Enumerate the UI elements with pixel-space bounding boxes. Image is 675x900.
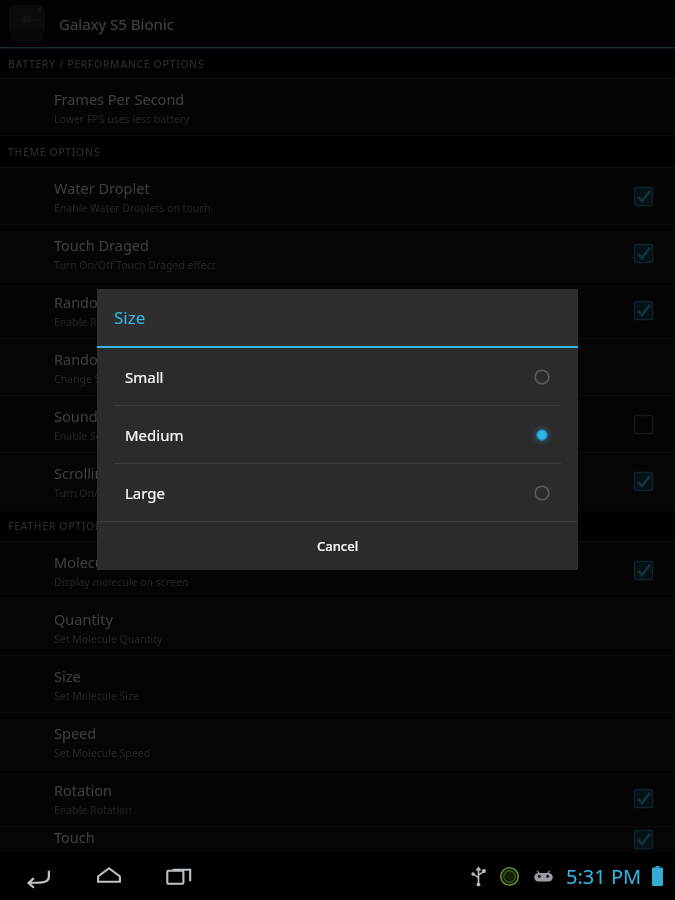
staticText: Set Molecule Size	[54, 689, 139, 703]
staticText: Set Molecule Speed	[54, 746, 151, 760]
button[interactable]: Random Speed	[0, 339, 675, 395]
staticText: Speed	[54, 723, 97, 743]
staticText: Turn On/Off Scrolling	[54, 486, 159, 500]
button[interactable]: Sound	[0, 396, 675, 452]
button[interactable]: Quantity	[0, 599, 675, 655]
staticText: Cancel	[317, 537, 359, 555]
staticText: Set Molecule Quantity	[54, 632, 163, 646]
staticText: Enable Water Droplets on touch	[54, 201, 211, 215]
staticText: THEME OPTIONS	[8, 145, 101, 159]
button[interactable]: Touch	[0, 827, 675, 852]
button[interactable]: Small	[97, 348, 578, 405]
button[interactable]: Random Color	[0, 282, 675, 338]
staticText: Lower FPS uses less battery	[54, 112, 190, 126]
staticText: Change Speed Randomly	[54, 372, 178, 386]
staticText: Small	[125, 367, 164, 387]
staticText: Galaxy S5 Bionic	[59, 14, 174, 34]
button[interactable]: Rotation	[0, 770, 675, 826]
staticText: Water Droplet	[54, 178, 150, 198]
staticText: Rotation	[54, 780, 112, 800]
button[interactable]: Large	[97, 464, 578, 521]
staticText: Molecule	[54, 552, 116, 572]
staticText: Touch	[54, 827, 95, 847]
staticText: Sound	[54, 406, 98, 426]
staticText: FEATHER OPTIONS	[8, 519, 110, 533]
staticText: Size	[54, 666, 81, 686]
staticText: Scrolling	[54, 463, 113, 483]
staticText: Quantity	[54, 609, 113, 629]
button[interactable]: Medium	[97, 406, 578, 463]
staticText: Size	[114, 306, 146, 329]
button[interactable]: Scrolling	[0, 453, 675, 509]
staticText: Medium	[125, 425, 184, 445]
staticText: 5:31 PM	[566, 863, 642, 890]
button[interactable]: Molecule	[0, 542, 675, 598]
staticText: BATTERY / PERFORMANCE OPTIONS	[8, 57, 205, 71]
button[interactable]: Size	[0, 656, 675, 712]
staticText: Enable Random Colors	[54, 315, 166, 329]
staticText: Enable Rotation	[54, 803, 132, 817]
button[interactable]: Speed	[0, 713, 675, 769]
staticText: Enable Sound	[54, 429, 122, 443]
staticText: Turn On/Off Touch Draged effect	[54, 258, 216, 272]
button[interactable]: Frames Per Second	[0, 79, 675, 135]
button[interactable]: Home	[86, 853, 132, 899]
button[interactable]: Water Droplet	[0, 168, 675, 224]
staticText: Frames Per Second	[54, 89, 185, 109]
staticText: Random Speed	[54, 349, 158, 369]
staticText: Display molecule on screen	[54, 575, 189, 589]
staticText: Large	[125, 483, 166, 503]
button[interactable]: Back	[16, 853, 62, 899]
button[interactable]: Cancel	[97, 522, 578, 570]
button[interactable]: Recent apps	[156, 853, 202, 899]
button[interactable]: Touch Draged	[0, 225, 675, 281]
staticText: Touch Draged	[54, 235, 149, 255]
staticText: Random Color	[54, 292, 152, 312]
